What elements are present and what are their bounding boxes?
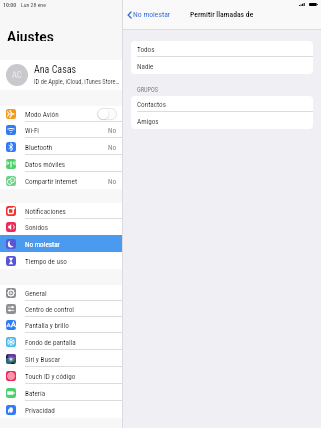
staticText: Fondo de pantalla xyxy=(25,338,117,346)
staticText: Notificaciones xyxy=(25,207,117,215)
staticText: Compartir Internet xyxy=(25,177,108,185)
staticText: Wi-Fi xyxy=(25,126,108,134)
staticText: Ana Casas xyxy=(34,64,77,76)
staticText: Contactos xyxy=(137,100,166,108)
staticText: AC xyxy=(12,70,22,80)
button[interactable]: Batería xyxy=(0,384,122,401)
staticText: Modo Avión xyxy=(25,110,97,118)
button[interactable]: No molestar xyxy=(0,235,122,252)
button[interactable]: Pantalla y brillo xyxy=(0,317,122,333)
staticText: Permitir llamadas de xyxy=(190,10,254,19)
staticText: No xyxy=(108,126,117,134)
staticText: Privacidad xyxy=(25,406,117,414)
staticText: Bluetooth xyxy=(25,143,108,151)
staticText: GRUPOS xyxy=(137,86,159,93)
staticText: No molestar xyxy=(133,10,171,19)
button[interactable]: AC xyxy=(0,60,122,90)
staticText: Centro de control xyxy=(25,305,117,313)
button[interactable]: Notificaciones xyxy=(0,203,122,219)
button[interactable]: General xyxy=(0,285,122,301)
staticText: Amigos xyxy=(137,117,159,125)
other: Back xyxy=(127,11,132,19)
button[interactable]: Centro de control xyxy=(0,301,122,317)
button[interactable]: Privacidad xyxy=(0,401,122,418)
staticText: No xyxy=(108,177,117,185)
button[interactable]: Datos móviles xyxy=(0,155,122,172)
staticText: ID de Apple, iCloud, iTunes Store… xyxy=(34,78,120,86)
button[interactable]: Touch ID y código xyxy=(0,367,122,384)
staticText: Pantalla y brillo xyxy=(25,321,117,329)
staticText: General xyxy=(25,289,117,297)
button[interactable]: Todos xyxy=(131,41,313,57)
button[interactable]: Contactos xyxy=(131,96,313,112)
staticText: 10:00 xyxy=(3,2,17,9)
staticText: Datos móviles xyxy=(25,160,117,168)
button[interactable]: Sonidos xyxy=(0,219,122,235)
staticText: Batería xyxy=(25,389,117,397)
staticText: Tiempo de uso xyxy=(25,257,117,265)
button[interactable]: Tiempo de uso xyxy=(0,252,122,269)
staticText: Todos xyxy=(137,45,155,53)
button[interactable]: Siri y Buscar xyxy=(0,350,122,367)
button[interactable]: Fondo de pantalla xyxy=(0,333,122,350)
staticText: No xyxy=(108,143,117,151)
button[interactable]: Modo Avión xyxy=(0,106,122,122)
button[interactable]: Bluetooth xyxy=(0,138,122,155)
staticText: Nadie xyxy=(137,62,154,70)
button[interactable]: Compartir Internet xyxy=(0,172,122,189)
button[interactable]: Amigos xyxy=(131,112,313,129)
staticText: Siri y Buscar xyxy=(25,355,117,363)
staticText: Lun 28 ene xyxy=(21,2,46,9)
button[interactable]: Nadie xyxy=(131,57,313,74)
button[interactable]: Wi-Fi xyxy=(0,122,122,138)
staticText: Ajustes xyxy=(7,29,54,41)
staticText: Touch ID y código xyxy=(25,372,117,380)
button[interactable]: Back xyxy=(127,10,171,19)
staticText: No molestar xyxy=(25,240,117,248)
staticText: Sonidos xyxy=(25,223,117,231)
